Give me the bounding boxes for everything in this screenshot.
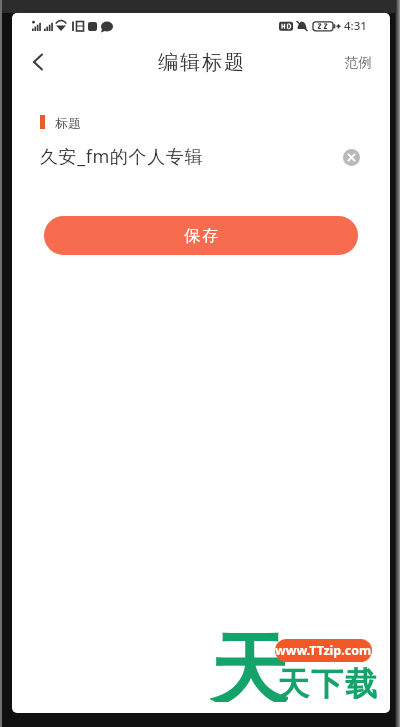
staticText: 天 [277,664,309,704]
button[interactable]: 范例 [344,54,372,71]
staticText: 4:31 [344,18,367,34]
staticText: 范例 [344,54,372,71]
button[interactable]: 保存 [44,216,358,255]
staticText: 久安_fm的个人专辑 [40,144,339,169]
staticText: www.TTzip.com [275,642,372,659]
staticText: 下 [311,664,343,704]
button[interactable] [339,145,363,169]
staticText: 保存 [183,226,219,246]
button[interactable] [20,44,56,80]
staticText: 载 [345,664,377,704]
staticText: 标题 [55,115,81,129]
staticText: 天 [210,622,288,702]
staticText: 编辑标题 [157,50,245,75]
button[interactable]: 久安_fm的个人专辑 [40,144,363,169]
